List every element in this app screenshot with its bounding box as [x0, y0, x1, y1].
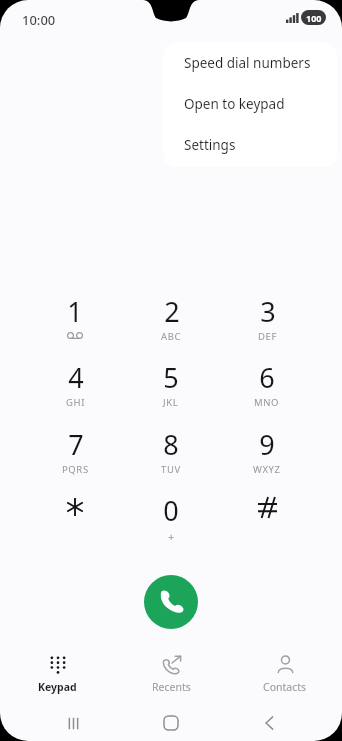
- staticText: 3: [260, 293, 276, 330]
- staticText: MNO: [254, 396, 280, 409]
- staticText: WXYZ: [253, 463, 281, 476]
- button[interactable]: Home: [153, 712, 189, 734]
- staticText: DEF: [258, 330, 277, 343]
- button[interactable]: Speed dial numbers: [163, 42, 337, 83]
- staticText: Speed dial numbers: [184, 54, 311, 72]
- button[interactable]: Call: [144, 575, 198, 629]
- staticText: Open to keypad: [184, 95, 285, 113]
- staticText: GHI: [66, 396, 85, 409]
- staticText: 8: [163, 426, 179, 463]
- staticText: 9: [259, 426, 275, 463]
- staticText: JKL: [163, 396, 179, 409]
- button[interactable]: Keypad: [0, 648, 114, 700]
- staticText: PQRS: [62, 463, 89, 476]
- button[interactable]: Recent apps: [55, 712, 91, 734]
- staticText: TUV: [161, 463, 181, 476]
- staticText: Settings: [184, 136, 236, 154]
- staticText: Keypad: [38, 680, 77, 694]
- staticText: ABC: [161, 330, 182, 343]
- button[interactable]: Settings: [163, 124, 337, 165]
- button[interactable]: Back: [251, 712, 287, 734]
- button[interactable]: 9: [225, 426, 309, 484]
- staticText: 0: [163, 492, 179, 529]
- staticText: 1: [67, 293, 83, 330]
- staticText: 5: [163, 359, 179, 396]
- staticText: 6: [259, 359, 275, 396]
- button[interactable]: 3: [225, 293, 309, 351]
- button[interactable]: Contacts: [228, 648, 342, 700]
- button[interactable]: 4: [33, 359, 117, 417]
- button[interactable]: 1: [33, 293, 117, 351]
- staticText: 10:00: [22, 11, 56, 29]
- staticText: Recents: [152, 680, 191, 694]
- staticText: Contacts: [263, 680, 307, 694]
- staticText: 7: [68, 426, 84, 463]
- button[interactable]: Open to keypad: [163, 83, 337, 124]
- button[interactable]: Recents: [114, 648, 228, 700]
- staticText: 100: [306, 12, 322, 24]
- button[interactable]: 8: [129, 426, 213, 484]
- button[interactable]: 2: [129, 293, 213, 351]
- button[interactable]: 0: [129, 492, 213, 550]
- staticText: 4: [68, 359, 84, 396]
- button[interactable]: [33, 492, 117, 550]
- button[interactable]: 7: [33, 426, 117, 484]
- button[interactable]: [225, 492, 309, 550]
- staticText: 2: [164, 293, 180, 330]
- staticText: +: [168, 529, 175, 544]
- button[interactable]: 6: [225, 359, 309, 417]
- button[interactable]: 5: [129, 359, 213, 417]
